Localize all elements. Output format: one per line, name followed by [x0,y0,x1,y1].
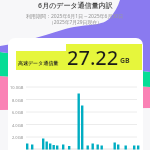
staticText: 4.0GB [12,123,24,128]
button[interactable]: 高速データ通信量 [8,38,143,150]
staticText: （2025年7月29日現在） [49,19,102,26]
staticText: 高速データ通信量 [18,60,59,66]
staticText: 10.0GB [10,85,24,90]
staticText: 6.0GB [12,110,24,115]
staticText: 6月のデータ通信量内訳 [38,1,113,11]
staticText: 2.0GB [12,135,24,140]
staticText: 8.0GB [12,98,24,103]
staticText: GB [120,56,130,66]
staticText: 利用期間：2025年6月1日～2025年6月30日 [26,13,124,20]
staticText: 27.22 [67,44,119,68]
